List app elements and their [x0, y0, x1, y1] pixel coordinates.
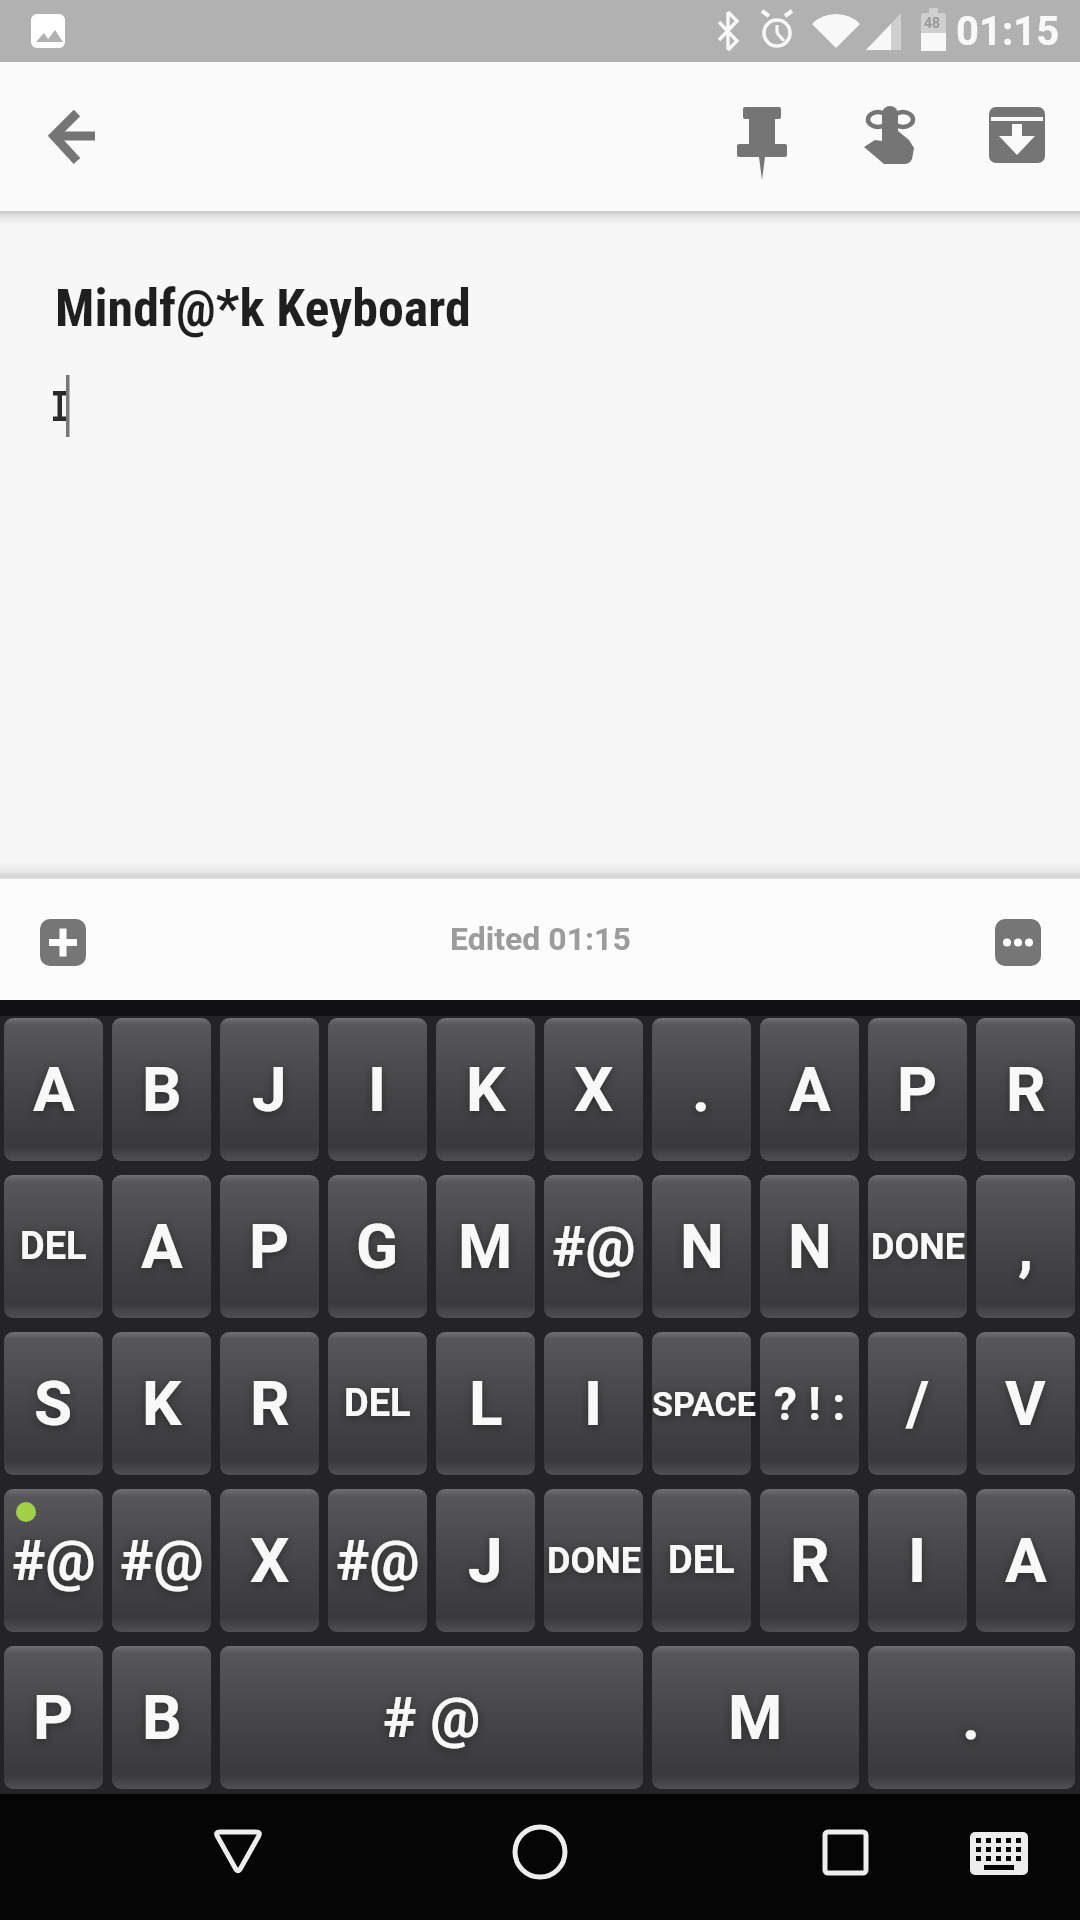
staticText: DEL — [20, 1224, 87, 1269]
button[interactable]: #@ — [112, 1489, 211, 1632]
button[interactable]: X — [220, 1489, 319, 1632]
button[interactable] — [729, 104, 795, 170]
button[interactable]: A — [760, 1018, 859, 1161]
staticText: G — [356, 1210, 399, 1283]
button[interactable]: B — [112, 1646, 211, 1789]
button[interactable]: N — [760, 1175, 859, 1318]
staticText: B — [142, 1681, 182, 1754]
button[interactable]: #@ — [544, 1175, 643, 1318]
button[interactable]: DEL — [328, 1332, 427, 1475]
button[interactable]: DEL — [652, 1489, 751, 1632]
button[interactable] — [855, 100, 921, 166]
button[interactable]: J — [436, 1489, 535, 1632]
button[interactable] — [40, 99, 106, 165]
button[interactable]: DONE — [544, 1489, 643, 1632]
staticText: R — [250, 1367, 290, 1440]
staticText: X — [574, 1053, 614, 1126]
staticText: . — [692, 1053, 711, 1126]
staticText: DEL — [668, 1538, 735, 1583]
button[interactable]: J — [220, 1018, 319, 1161]
button[interactable] — [966, 1830, 1032, 1880]
staticText: #@ — [336, 1528, 420, 1594]
button[interactable]: I — [868, 1489, 967, 1632]
button[interactable]: K — [436, 1018, 535, 1161]
button[interactable]: B — [112, 1018, 211, 1161]
staticText: X — [250, 1524, 290, 1597]
button[interactable]: G — [328, 1175, 427, 1318]
button[interactable]: , — [976, 1175, 1075, 1318]
staticText: / — [906, 1367, 930, 1440]
button[interactable]: I — [328, 1018, 427, 1161]
button[interactable] — [40, 919, 86, 966]
button[interactable]: #@ — [328, 1489, 427, 1632]
staticText: K — [466, 1053, 506, 1126]
button[interactable]: N — [652, 1175, 751, 1318]
button[interactable]: Mindf@*k Keyboard — [0, 225, 1080, 875]
button[interactable]: #@ — [4, 1489, 103, 1632]
staticText: 48 — [924, 15, 941, 31]
staticText: P — [897, 1053, 938, 1126]
staticText: A — [33, 1053, 75, 1126]
button[interactable]: R — [976, 1018, 1075, 1161]
staticText: R — [790, 1524, 830, 1597]
staticText: . — [962, 1681, 981, 1754]
staticText: P — [249, 1210, 290, 1283]
staticText: , — [1018, 1210, 1034, 1283]
button[interactable]: R — [760, 1489, 859, 1632]
button[interactable]: SPACE — [652, 1332, 751, 1475]
button[interactable]: V — [976, 1332, 1075, 1475]
staticText: L — [469, 1367, 503, 1440]
button[interactable]: P — [220, 1175, 319, 1318]
staticText: DONE — [547, 1540, 641, 1582]
button[interactable]: P — [4, 1646, 103, 1789]
button[interactable]: R — [220, 1332, 319, 1475]
staticText: J — [252, 1053, 287, 1126]
button[interactable] — [984, 104, 1050, 170]
button[interactable]: A — [4, 1018, 103, 1161]
staticText: K — [142, 1367, 182, 1440]
button[interactable] — [995, 919, 1041, 966]
staticText: DEL — [344, 1381, 411, 1426]
button[interactable]: DEL — [4, 1175, 103, 1318]
staticText: A — [141, 1210, 183, 1283]
button[interactable] — [812, 1822, 878, 1888]
staticText: #@ — [12, 1528, 96, 1594]
button[interactable]: # @ — [220, 1646, 643, 1789]
staticText: S — [34, 1367, 73, 1440]
staticText: I — [368, 1053, 387, 1126]
staticText: M — [458, 1210, 513, 1283]
button[interactable] — [204, 1822, 270, 1888]
staticText: # @ — [383, 1685, 481, 1751]
button[interactable] — [507, 1822, 573, 1888]
staticText: B — [142, 1053, 182, 1126]
button[interactable]: S — [4, 1332, 103, 1475]
button[interactable]: M — [652, 1646, 859, 1789]
button[interactable]: . — [652, 1018, 751, 1161]
button[interactable]: I — [544, 1332, 643, 1475]
staticText: SPACE — [652, 1384, 751, 1424]
button[interactable]: . — [868, 1646, 1075, 1789]
button[interactable]: K — [112, 1332, 211, 1475]
button[interactable]: M — [436, 1175, 535, 1318]
button[interactable]: X — [544, 1018, 643, 1161]
staticText: A — [1005, 1524, 1047, 1597]
staticText: J — [468, 1524, 503, 1597]
staticText: N — [788, 1210, 832, 1283]
button[interactable]: ? ! : — [760, 1332, 859, 1475]
button[interactable]: A — [112, 1175, 211, 1318]
staticText: Mindf@*k Keyboard — [55, 278, 471, 339]
button[interactable]: L — [436, 1332, 535, 1475]
button[interactable]: / — [868, 1332, 967, 1475]
staticText: I — [584, 1367, 603, 1440]
button[interactable]: A — [976, 1489, 1075, 1632]
staticText: V — [1005, 1367, 1046, 1440]
button[interactable]: P — [868, 1018, 967, 1161]
staticText: R — [1006, 1053, 1046, 1126]
staticText: P — [33, 1681, 74, 1754]
staticText: M — [728, 1681, 783, 1754]
staticText: ? ! : — [774, 1377, 846, 1431]
staticText: 01:15 — [956, 8, 1060, 55]
staticText: I — [908, 1524, 927, 1597]
button[interactable]: DONE — [868, 1175, 967, 1318]
staticText: Edited 01:15 — [450, 920, 631, 958]
